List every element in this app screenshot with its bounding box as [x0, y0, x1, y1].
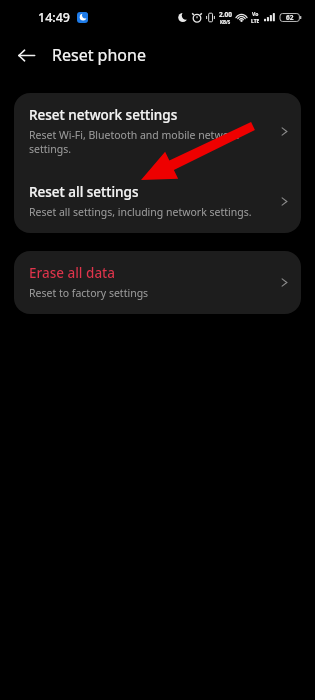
staticText: 14:49 [38, 9, 71, 26]
staticText: Reset all settings, including network se… [29, 205, 252, 219]
staticText: LTE [251, 18, 260, 25]
staticText: 62 [286, 13, 294, 22]
staticText: Reset Wi-Fi, Bluetooth and mobile networ… [29, 128, 272, 156]
staticText: Reset to factory settings [29, 286, 149, 300]
button[interactable]: Reset network settings [14, 93, 301, 170]
staticText: Reset all settings [29, 183, 139, 201]
staticText: Reset network settings [29, 106, 178, 124]
button[interactable]: Erase all data [14, 251, 301, 314]
button[interactable]: Back [8, 37, 44, 73]
button[interactable]: Reset all settings [14, 170, 301, 233]
staticText: 2.00 [219, 10, 232, 19]
staticText: Erase all data [29, 264, 116, 282]
staticText: Vo [252, 11, 259, 18]
staticText: Reset phone [52, 44, 146, 66]
staticText: KB/S [220, 19, 231, 25]
